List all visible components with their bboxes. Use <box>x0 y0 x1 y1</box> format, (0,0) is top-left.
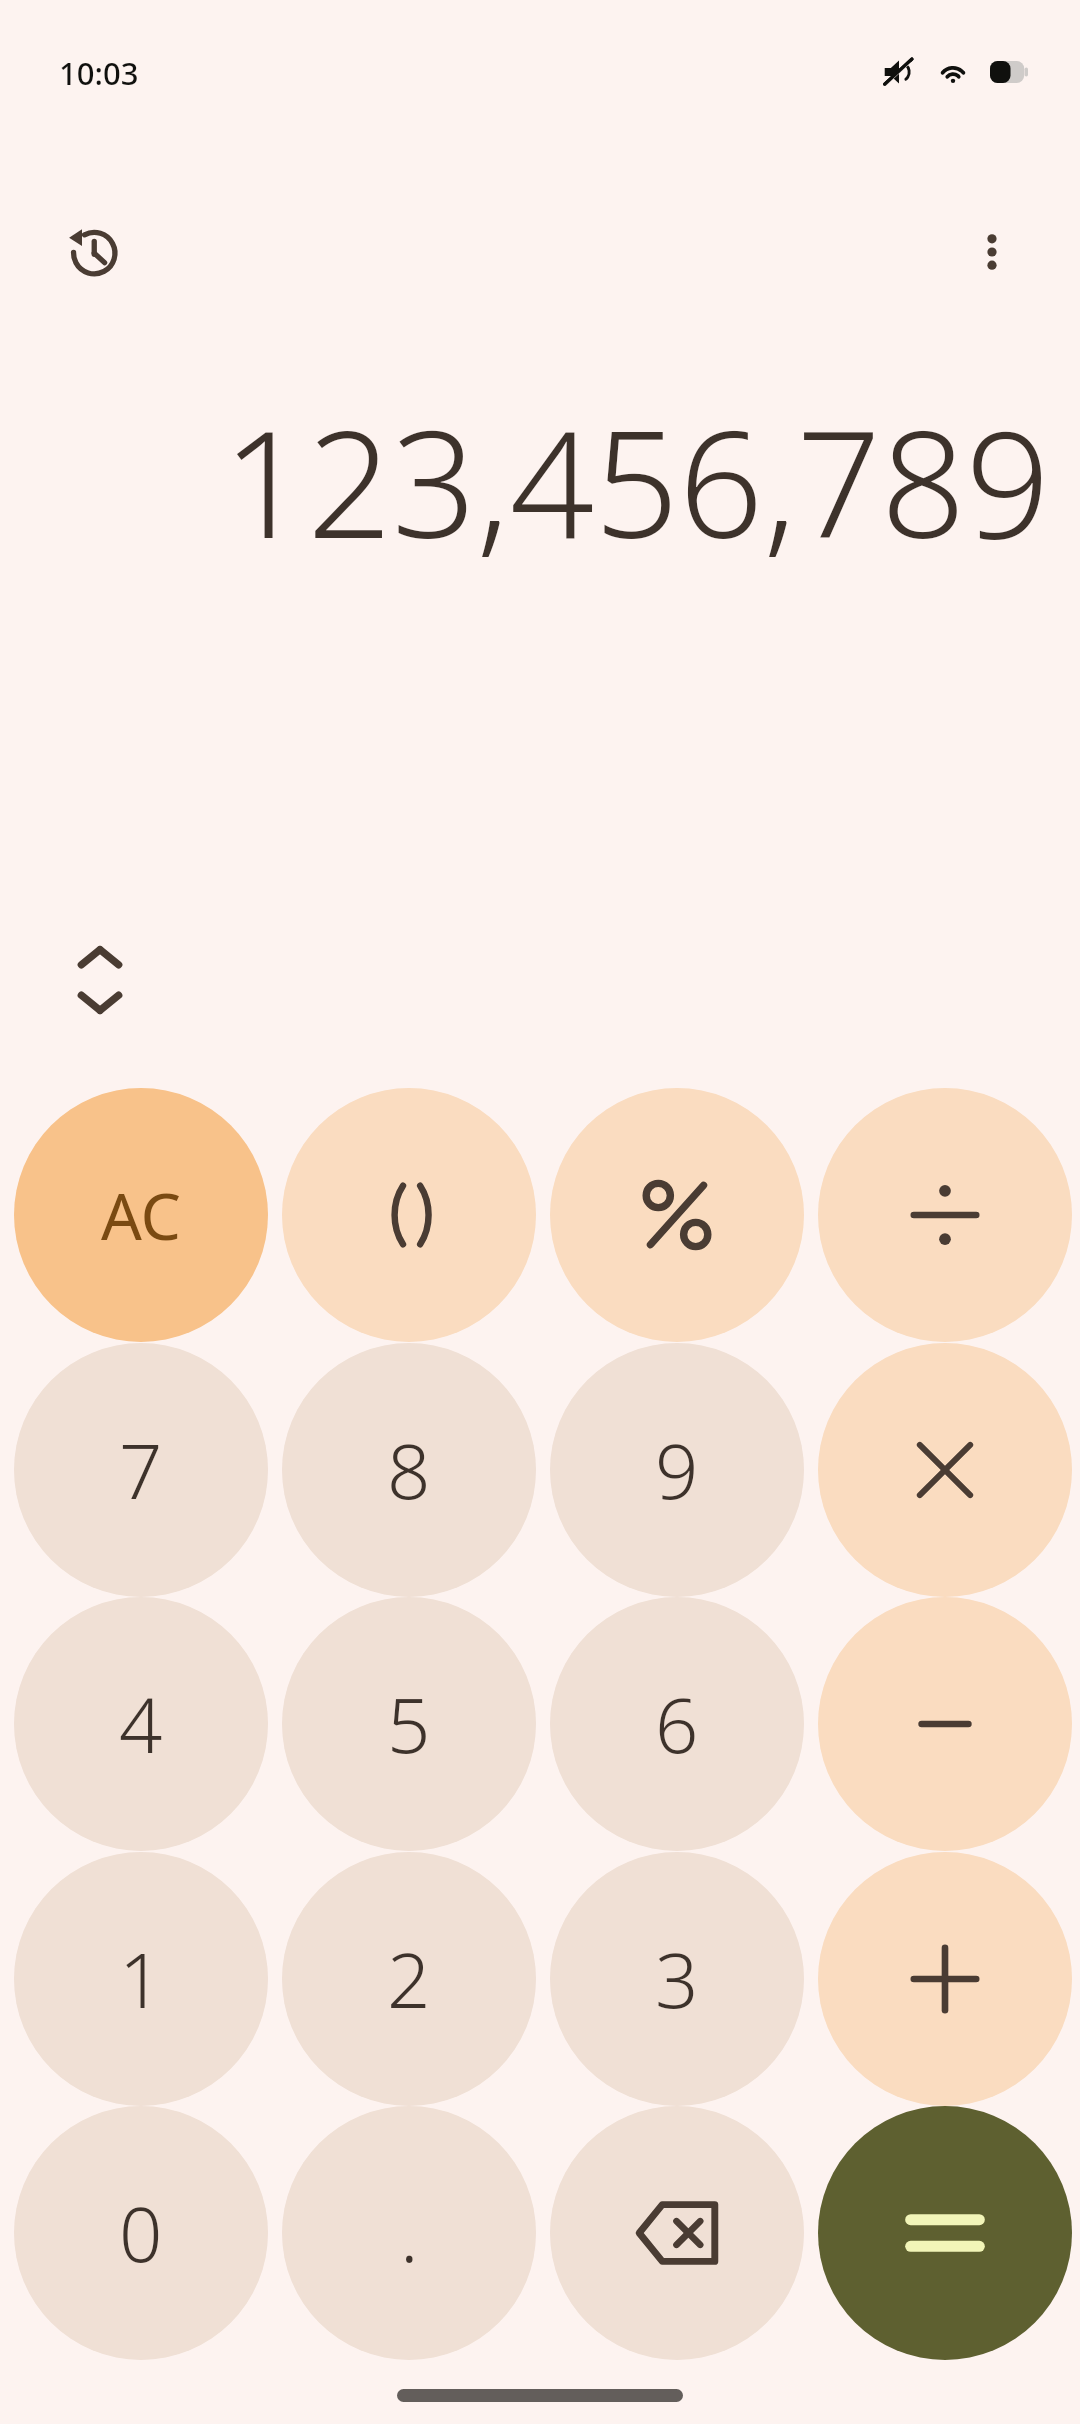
staticText: 1 <box>119 1927 163 2031</box>
staticText: 0 <box>119 2181 163 2285</box>
staticText: 7 <box>119 1418 163 1522</box>
button[interactable]: 2 <box>282 1852 536 2106</box>
staticText: . <box>400 2181 419 2285</box>
staticText: 5 <box>387 1672 431 1776</box>
button[interactable] <box>550 1088 804 1342</box>
button[interactable]: 3 <box>550 1852 804 2106</box>
button[interactable]: 0 <box>14 2106 268 2360</box>
button[interactable]: 1 <box>14 1852 268 2106</box>
button[interactable]: AC <box>14 1088 268 1342</box>
staticText: 9 <box>655 1418 699 1522</box>
button[interactable]: . <box>282 2106 536 2360</box>
button[interactable]: 8 <box>282 1343 536 1597</box>
button[interactable]: More options <box>932 192 1052 312</box>
staticText: 10:03 <box>59 52 139 94</box>
staticText: 8 <box>387 1418 431 1522</box>
staticText: 4 <box>119 1672 163 1776</box>
staticText: 6 <box>655 1672 699 1776</box>
staticText: 3 <box>655 1927 699 2031</box>
button[interactable] <box>818 1343 1072 1597</box>
button[interactable]: History <box>32 192 152 312</box>
button[interactable]: Backspace <box>550 2106 804 2360</box>
button[interactable]: 9 <box>550 1343 804 1597</box>
button[interactable]: Equals <box>818 2106 1072 2360</box>
button[interactable] <box>282 1088 536 1342</box>
button[interactable]: 6 <box>550 1597 804 1851</box>
button[interactable]: Expand <box>52 926 148 1034</box>
staticText: 123,456,789 <box>222 380 1050 582</box>
button[interactable]: 5 <box>282 1597 536 1851</box>
button[interactable] <box>818 1088 1072 1342</box>
button[interactable] <box>818 1597 1072 1851</box>
button[interactable] <box>818 1852 1072 2106</box>
button[interactable]: 7 <box>14 1343 268 1597</box>
staticText: 2 <box>387 1927 431 2031</box>
staticText: AC <box>101 1172 182 1259</box>
button[interactable]: 4 <box>14 1597 268 1851</box>
